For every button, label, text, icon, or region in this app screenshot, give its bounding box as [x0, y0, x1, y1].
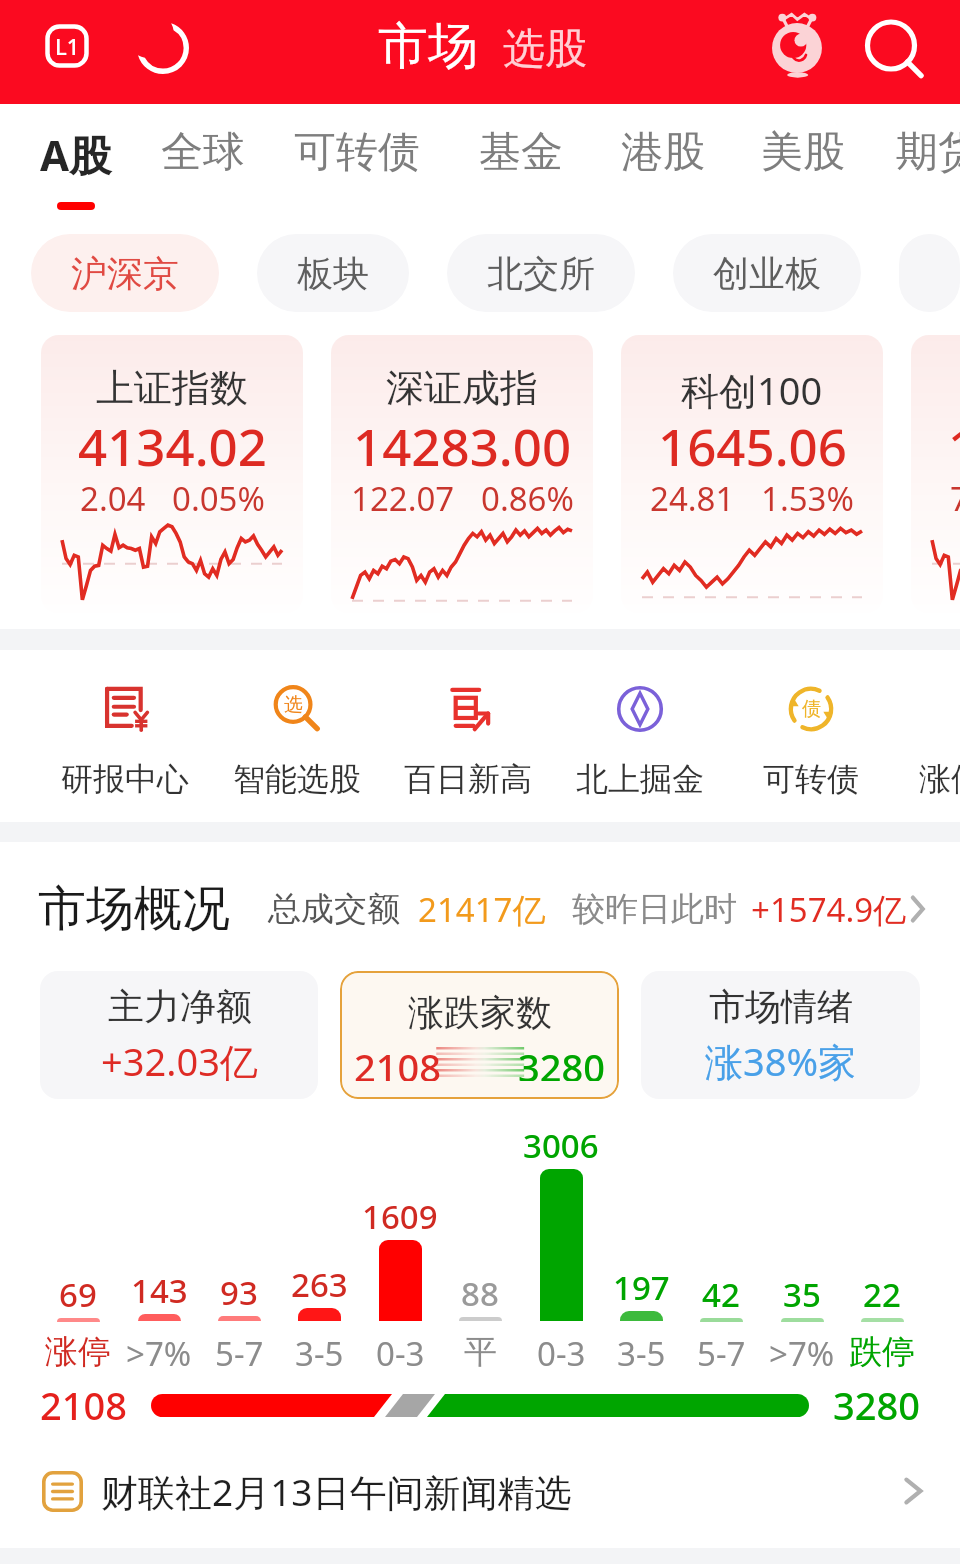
- staticText: 3-5: [617, 1331, 666, 1376]
- button[interactable]: 期货: [886, 104, 960, 216]
- staticText: 4134.02: [78, 411, 267, 480]
- staticText: >7%: [769, 1331, 835, 1376]
- button[interactable]: 197: [601, 1110, 681, 1370]
- staticText: 1609: [362, 1194, 438, 1239]
- button[interactable]: 主力净额: [40, 971, 318, 1099]
- staticText: 2108: [354, 1041, 441, 1081]
- staticText: A股: [40, 126, 112, 183]
- button[interactable]: 财联社2月13日午间新闻精选: [0, 1434, 960, 1548]
- button[interactable]: 沪深京: [31, 234, 219, 312]
- staticText: 智能选股: [233, 759, 361, 799]
- button[interactable]: 35: [762, 1110, 842, 1370]
- staticText: 7.22: [950, 476, 960, 521]
- staticText: 可转债: [294, 126, 420, 179]
- button[interactable]: 市场: [378, 15, 478, 78]
- button[interactable]: 涨停先锋: [897, 650, 960, 822]
- button[interactable]: 北证50: [911, 335, 960, 613]
- staticText: 市场情绪: [709, 984, 853, 1029]
- staticText: 42: [702, 1272, 740, 1317]
- button[interactable]: 22: [842, 1110, 922, 1370]
- staticText: 5-7: [215, 1331, 264, 1376]
- button[interactable]: 基金: [469, 104, 573, 216]
- staticText: 1645.06: [658, 411, 847, 480]
- staticText: 197: [613, 1265, 670, 1310]
- button[interactable]: 涨跌家数: [340, 971, 619, 1099]
- button[interactable]: 港股: [611, 104, 715, 216]
- staticText: L1: [55, 31, 80, 61]
- button[interactable]: A股: [24, 104, 128, 216]
- button[interactable]: 创业板: [673, 234, 861, 312]
- staticText: 0-3: [376, 1331, 425, 1376]
- button[interactable]: 93: [199, 1110, 279, 1370]
- staticText: 143: [131, 1268, 188, 1313]
- button[interactable]: 3006: [521, 1110, 601, 1370]
- staticText: 期货: [896, 126, 960, 179]
- button[interactable]: 88: [440, 1110, 520, 1370]
- staticText: 0.86%: [481, 476, 574, 521]
- staticText: 0.05%: [172, 476, 265, 521]
- staticText: 5-7: [697, 1331, 746, 1376]
- staticText: 研报中心: [61, 759, 189, 799]
- staticText: 88: [461, 1271, 499, 1316]
- staticText: 百日新高: [404, 759, 532, 799]
- staticText: 1325.77: [948, 411, 960, 480]
- staticText: 选: [284, 693, 303, 717]
- staticText: 263: [291, 1262, 348, 1307]
- staticText: 93: [220, 1270, 258, 1315]
- staticText: 涨38%家: [705, 1035, 857, 1087]
- button[interactable]: 1609: [360, 1110, 440, 1370]
- staticText: 平: [464, 1331, 497, 1373]
- staticText: 14283.00: [353, 411, 572, 480]
- button[interactable]: Level 1 quotes: [42, 21, 92, 71]
- button[interactable]: AI assistant: [766, 13, 830, 77]
- button[interactable]: 债: [725, 650, 897, 822]
- staticText: 122.07: [351, 476, 455, 521]
- staticText: 港股: [621, 126, 705, 179]
- button[interactable]: 42: [681, 1110, 761, 1370]
- button[interactable]: 143: [119, 1110, 199, 1370]
- button[interactable]: 北上掘金: [554, 650, 726, 822]
- button[interactable]: 研报中心: [39, 650, 211, 822]
- staticText: 2.04: [80, 476, 146, 521]
- staticText: 基金: [479, 126, 563, 179]
- button[interactable]: 北交所: [447, 234, 635, 312]
- button[interactable]: 全球: [151, 104, 255, 216]
- button[interactable]: 可转债: [286, 104, 428, 216]
- button[interactable]: Search: [856, 16, 928, 88]
- staticText: 可转债: [763, 759, 859, 799]
- staticText: 跌停: [849, 1331, 915, 1373]
- button[interactable]: 263: [279, 1110, 359, 1370]
- button[interactable]: 科创板: [899, 234, 960, 312]
- staticText: 24.81: [650, 476, 735, 521]
- staticText: 3280: [518, 1041, 605, 1081]
- staticText: 总成交额: [268, 888, 400, 930]
- button[interactable]: 百日新高: [382, 650, 554, 822]
- button[interactable]: 市场情绪: [641, 971, 920, 1099]
- staticText: 3006: [523, 1123, 599, 1168]
- staticText: 21417亿: [418, 887, 546, 932]
- button[interactable]: 市场概况: [0, 842, 960, 952]
- staticText: 涨跌家数: [408, 990, 552, 1035]
- staticText: 美股: [761, 126, 845, 179]
- staticText: 2108: [40, 1379, 127, 1431]
- button[interactable]: 美股: [751, 104, 855, 216]
- staticText: 涨停先锋: [919, 759, 960, 799]
- button[interactable]: 69: [38, 1110, 118, 1370]
- staticText: 深证成指: [386, 364, 538, 412]
- staticText: 涨停: [45, 1331, 111, 1373]
- staticText: 市场概况: [38, 879, 230, 939]
- staticText: 债: [802, 697, 821, 721]
- staticText: 主力净额: [108, 984, 252, 1029]
- button[interactable]: 板块: [257, 234, 409, 312]
- staticText: 财联社2月13日午间新闻精选: [101, 1466, 572, 1517]
- button[interactable]: 选: [211, 650, 383, 822]
- staticText: 沪深京: [71, 251, 179, 296]
- staticText: 创业板: [713, 251, 821, 296]
- button[interactable]: 科创100: [621, 335, 883, 613]
- button[interactable]: 上证指数: [41, 335, 303, 613]
- staticText: 3-5: [295, 1331, 344, 1376]
- staticText: 69: [59, 1272, 97, 1317]
- button[interactable]: Night mode: [135, 20, 191, 76]
- button[interactable]: 选股: [503, 23, 587, 76]
- button[interactable]: 深证成指: [331, 335, 593, 613]
